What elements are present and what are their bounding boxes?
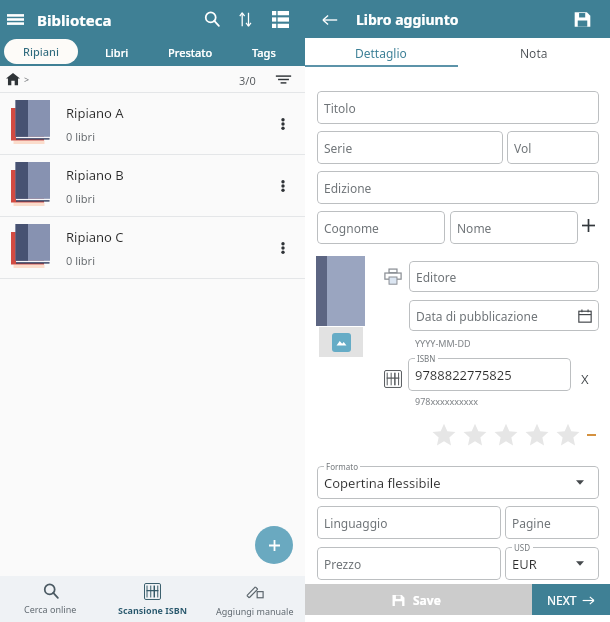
staticText: NEXT (547, 592, 577, 608)
staticText: Pagine (512, 515, 551, 531)
button[interactable]: Cerca online (0, 576, 101, 622)
button[interactable]: Rate 4 stars (521, 419, 552, 450)
button[interactable]: EUR (505, 547, 599, 580)
button[interactable]: Save book (567, 5, 597, 34)
staticText: Ripiano C (66, 228, 124, 246)
button[interactable]: Back (315, 5, 345, 34)
staticText: YYYY-MM-DD (415, 337, 471, 349)
button[interactable]: Libri (82, 38, 152, 66)
button[interactable]: Aggiungi manuale (204, 576, 305, 622)
button[interactable]: Format dropdown (569, 473, 591, 492)
button[interactable]: Rate 2 stars (459, 419, 490, 450)
staticText: 0 libri (66, 191, 95, 206)
staticText: > (24, 73, 30, 85)
button[interactable]: Currency dropdown (569, 554, 591, 573)
staticText: Dettaglio (355, 45, 407, 61)
staticText: Linguaggio (324, 515, 388, 531)
staticText: Formato (326, 461, 358, 472)
staticText: X (581, 370, 589, 388)
staticText: 0 libri (66, 253, 95, 268)
button[interactable]: Search (196, 4, 227, 34)
button[interactable]: Titolo (317, 91, 599, 124)
staticText: ISBN (417, 353, 436, 364)
button[interactable]: Rate 5 stars (552, 419, 583, 450)
button[interactable]: View mode (265, 4, 296, 34)
staticText: Nota (520, 45, 548, 61)
button[interactable]: Pagine (505, 506, 599, 539)
button[interactable]: Prestato (155, 38, 225, 66)
button[interactable]: Rate 3 stars (490, 419, 521, 450)
staticText: Titolo (324, 100, 356, 116)
button[interactable]: Vol (507, 131, 599, 164)
staticText: Ripiano B (66, 166, 124, 184)
staticText: Save (413, 592, 441, 608)
staticText: Tags (252, 45, 276, 60)
staticText: Aggiungi manuale (216, 605, 294, 617)
staticText: Ripiano A (66, 104, 124, 122)
button[interactable]: Scansione ISBN (102, 576, 203, 622)
staticText: Edizione (324, 180, 372, 196)
button[interactable]: Data di pubblicazione (409, 300, 599, 331)
staticText: Biblioteca (37, 10, 112, 30)
staticText: 978xxxxxxxxxx (415, 395, 479, 407)
staticText: 0 libri (66, 129, 95, 144)
button[interactable]: Clear rating (583, 419, 600, 450)
button[interactable]: Copertina flessibile (317, 466, 599, 499)
button[interactable]: Add author (575, 212, 601, 238)
staticText: Scansione ISBN (118, 604, 188, 616)
staticText: 9788822775825 (415, 366, 512, 384)
button[interactable]: Linguaggio (317, 506, 501, 539)
button[interactable]: Pick date (576, 307, 594, 325)
staticText: Vol (514, 140, 532, 156)
staticText: Serie (324, 140, 353, 156)
button[interactable]: Serie (317, 131, 503, 164)
button[interactable]: More options (268, 169, 298, 203)
staticText: 3/0 (239, 73, 256, 88)
staticText: Prestato (168, 45, 213, 60)
button[interactable]: Editore (409, 261, 599, 292)
button[interactable]: Nome (450, 211, 578, 244)
button[interactable]: Cognome (317, 211, 445, 244)
button[interactable]: More options (268, 231, 298, 265)
button[interactable]: Clear ISBN (573, 367, 597, 391)
button[interactable]: 9788822775825 (408, 358, 571, 391)
button[interactable]: Ripiano A (0, 93, 305, 154)
staticText: Ripiani (23, 44, 59, 59)
staticText: Cerca online (24, 603, 77, 615)
button[interactable]: Filter (272, 69, 294, 89)
button[interactable]: Home (3, 69, 22, 89)
button[interactable]: Ripiani (4, 39, 78, 64)
staticText: Libri (105, 45, 129, 60)
button[interactable]: Save (305, 584, 532, 615)
button[interactable]: Sort (230, 4, 261, 34)
button[interactable]: Dettaglio (305, 38, 457, 67)
staticText: Nome (457, 220, 492, 236)
staticText: Data di pubblicazione (416, 308, 538, 324)
staticText: Copertina flessibile (324, 474, 441, 492)
staticText: Editore (416, 269, 457, 285)
staticText: Prezzo (324, 556, 362, 572)
staticText: Cognome (324, 220, 379, 236)
button[interactable]: Ripiano C (0, 217, 305, 278)
button[interactable]: NEXT (532, 584, 610, 615)
button[interactable]: Ripiano B (0, 155, 305, 216)
button[interactable]: Nota (457, 38, 610, 67)
button[interactable]: Rate 1 stars (428, 419, 459, 450)
staticText: EUR (512, 555, 537, 573)
button[interactable]: Tags (229, 38, 299, 66)
button[interactable]: Prezzo (317, 547, 501, 580)
button[interactable]: Menu (0, 4, 31, 34)
button[interactable]: Edizione (317, 171, 599, 204)
button[interactable]: Pick cover image (319, 327, 363, 357)
staticText: USD (514, 542, 531, 553)
staticText: Libro aggiunto (356, 10, 459, 29)
button[interactable]: More options (268, 107, 298, 141)
button[interactable]: Add (255, 526, 293, 564)
